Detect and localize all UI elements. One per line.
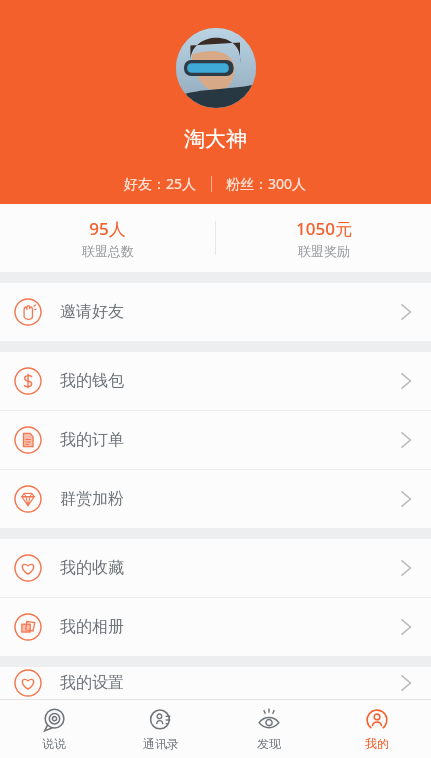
staticText: 我的钱包 [60,371,124,391]
button[interactable]: 说说 [0,700,107,758]
button[interactable]: 发现 [215,700,323,758]
staticText: 我的设置 [60,673,124,693]
staticText: 联盟总数 [82,243,134,259]
staticText: 我的相册 [60,617,124,637]
staticText: 我的收藏 [60,558,124,578]
staticText: 群赏加粉 [60,489,124,509]
button[interactable]: 我的相册 [0,598,431,656]
staticText: 联盟奖励 [298,243,350,259]
button[interactable]: 我的收藏 [0,539,431,597]
button[interactable]: 我的设置 [0,667,431,699]
staticText: 邀请好友 [60,302,124,322]
button[interactable]: 我的 [323,700,431,758]
staticText: 好友：25人 [124,174,197,193]
staticText: 95人 [89,217,126,240]
button[interactable]: 1050元 [216,217,431,259]
staticText: 发现 [257,736,281,751]
button[interactable]: 95人 [0,217,215,259]
staticText: 我的订单 [60,430,124,450]
staticText: 说说 [42,736,66,751]
button[interactable]: 通讯录 [107,700,215,758]
staticText: 我的 [365,736,389,751]
button[interactable]: 我的钱包 [0,352,431,410]
staticText: 1050元 [296,217,352,240]
button[interactable]: 邀请好友 [0,283,431,341]
staticText: 淘大神 [184,126,247,152]
button[interactable]: Avatar [176,28,256,108]
staticText: 粉丝：300人 [226,174,307,193]
button[interactable]: 我的订单 [0,411,431,469]
staticText: 通讯录 [143,736,179,751]
button[interactable]: 群赏加粉 [0,470,431,528]
